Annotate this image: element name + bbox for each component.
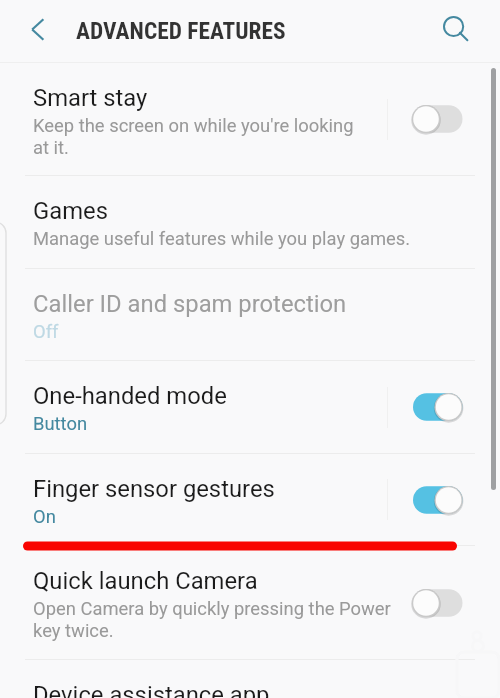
staticText: Games	[33, 197, 108, 225]
staticText: Off	[33, 321, 59, 343]
button[interactable]: One-handed mode switch	[388, 379, 500, 435]
button[interactable]: One-handed mode	[0, 361, 500, 453]
staticText: Quick launch Camera	[33, 567, 258, 595]
staticText: Open Camera by quickly pressing the Powe…	[33, 598, 391, 642]
staticText: Device assistance app	[33, 681, 270, 698]
staticText: Smart stay	[33, 84, 148, 112]
button[interactable]: Quick launch Camera switch	[388, 575, 500, 631]
button[interactable]: Finger sensor gestures	[0, 454, 500, 545]
button[interactable]: Navigate up	[18, 13, 56, 51]
button[interactable]: Caller ID and spam protection	[0, 269, 500, 360]
staticText: Button	[33, 413, 88, 435]
button[interactable]: Finger sensor gestures switch	[388, 472, 500, 528]
button[interactable]: Quick launch Camera	[0, 546, 500, 659]
button[interactable]: Smart stay switch	[388, 91, 500, 147]
staticText: One-handed mode	[33, 382, 227, 410]
button[interactable]: Smart stay	[0, 63, 500, 175]
staticText: Caller ID and spam protection	[33, 290, 347, 318]
staticText: ADVANCED FEATURES	[76, 17, 286, 44]
button[interactable]: Device assistance app	[0, 660, 500, 698]
button[interactable]: Games	[0, 176, 500, 268]
staticText: Keep the screen on while you're looking …	[33, 115, 354, 159]
staticText: On	[33, 506, 56, 528]
staticText: Finger sensor gestures	[33, 475, 275, 503]
staticText: Manage useful features while you play ga…	[33, 228, 411, 250]
button[interactable]: Search	[436, 13, 472, 49]
